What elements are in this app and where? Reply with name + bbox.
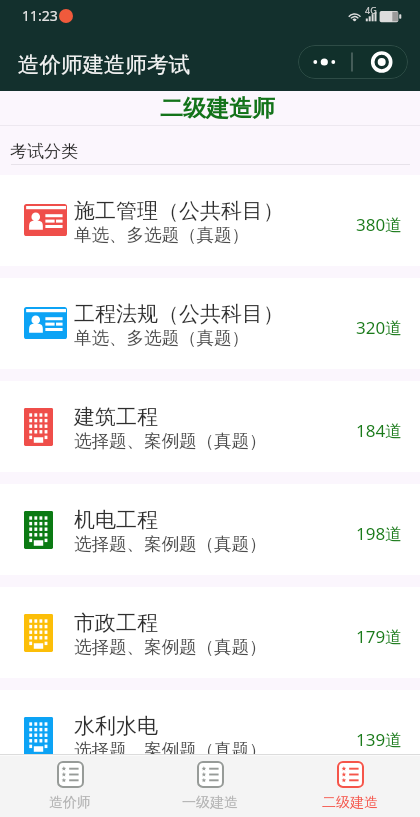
staticText: 选择题、案例题（真题） [74,430,267,452]
staticText: 4G [365,4,377,16]
staticText: 二级建造师 [160,94,275,123]
staticText: 139道 [356,728,403,751]
staticText: 选择题、案例题（真题） [74,636,267,658]
staticText: 市政工程 [74,610,158,636]
staticText: 380道 [356,213,403,236]
button[interactable]: 工程法规（公共科目） [0,278,420,369]
staticText: 单选、多选题（真题） [74,224,249,246]
staticText: 考试分类 [10,141,78,162]
staticText: 一级建造 [182,794,238,812]
staticText: 机电工程 [74,507,158,533]
staticText: 单选、多选题（真题） [74,327,249,349]
button[interactable]: 机电工程 [0,484,420,575]
staticText: 建筑工程 [74,404,158,430]
button[interactable]: 更多 [298,45,408,79]
button[interactable]: 造价师 [0,756,140,817]
staticText: 320道 [356,316,403,339]
staticText: 选择题、案例题（真题） [74,739,267,761]
button[interactable]: 水利水电 [0,690,420,781]
staticText: 造价师 [49,794,91,812]
staticText: 施工管理（公共科目） [74,198,284,224]
staticText: 二级建造 [322,794,378,812]
staticText: 选择题、案例题（真题） [74,533,267,555]
staticText: 179道 [356,625,403,648]
button[interactable]: 市政工程 [0,587,420,678]
staticText: 水利水电 [74,713,158,739]
staticText: 11:23 [22,6,58,25]
staticText: 造价师建造师考试 [18,51,190,78]
button[interactable]: 一级建造 [140,756,280,817]
staticText: 184道 [356,419,403,442]
button[interactable]: 建筑工程 [0,381,420,472]
staticText: 工程法规（公共科目） [74,301,284,327]
staticText: 198道 [356,522,403,545]
button[interactable]: 施工管理（公共科目） [0,175,420,266]
button[interactable]: 二级建造 [280,756,420,817]
